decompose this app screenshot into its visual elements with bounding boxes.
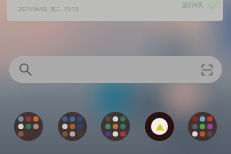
button[interactable]: Scan: [9, 56, 222, 83]
button[interactable]: Folder: [14, 112, 43, 141]
button[interactable]: App: [145, 112, 174, 141]
button[interactable]: Folder: [58, 112, 87, 141]
button[interactable]: Folder: [188, 112, 217, 141]
staticText: 运行9天: [182, 1, 204, 9]
button[interactable]: Scan: [197, 60, 217, 80]
button[interactable]: Folder: [101, 112, 130, 141]
staticText: 2021/06/02 周二 10:15: [18, 5, 79, 13]
